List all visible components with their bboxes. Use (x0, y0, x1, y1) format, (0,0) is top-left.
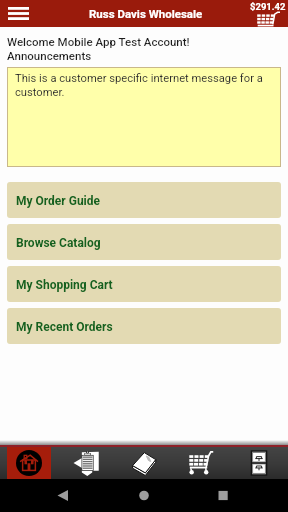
staticText: My Shopping Cart (16, 278, 113, 292)
staticText: Welcome Mobile App Test Account! (7, 35, 190, 48)
button[interactable]: Home (0, 447, 57, 479)
button[interactable]: Shopping cart (248, 0, 288, 27)
staticText: $291.42 (250, 1, 286, 12)
staticText: Browse Catalog (16, 236, 101, 250)
button[interactable]: Menu (0, 0, 36, 27)
staticText: This is a customer specific internet mes… (15, 72, 271, 99)
button[interactable]: Shopping Cart (172, 447, 230, 479)
button[interactable]: Recent Orders (230, 447, 288, 479)
button[interactable]: My Recent Orders (7, 308, 281, 344)
button[interactable]: My Order Guide (7, 182, 281, 218)
button[interactable]: My Shopping Cart (7, 266, 281, 302)
staticText: My Order Guide (16, 194, 101, 208)
button[interactable]: My Order Guide (57, 447, 114, 479)
staticText: Russ Davis Wholesale (89, 7, 203, 20)
staticText: Announcements (7, 49, 92, 62)
button[interactable]: Browse Catalog (114, 447, 172, 479)
staticText: My Recent Orders (16, 320, 113, 334)
button[interactable]: Browse Catalog (7, 224, 281, 260)
